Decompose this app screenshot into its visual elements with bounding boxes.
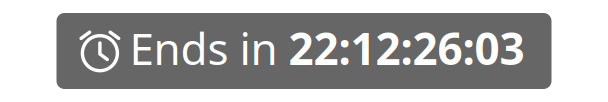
button[interactable]: Ends in — [56, 13, 551, 89]
staticText: Ends in — [129, 19, 288, 77]
staticText: 22:12:26:03 — [288, 19, 524, 77]
